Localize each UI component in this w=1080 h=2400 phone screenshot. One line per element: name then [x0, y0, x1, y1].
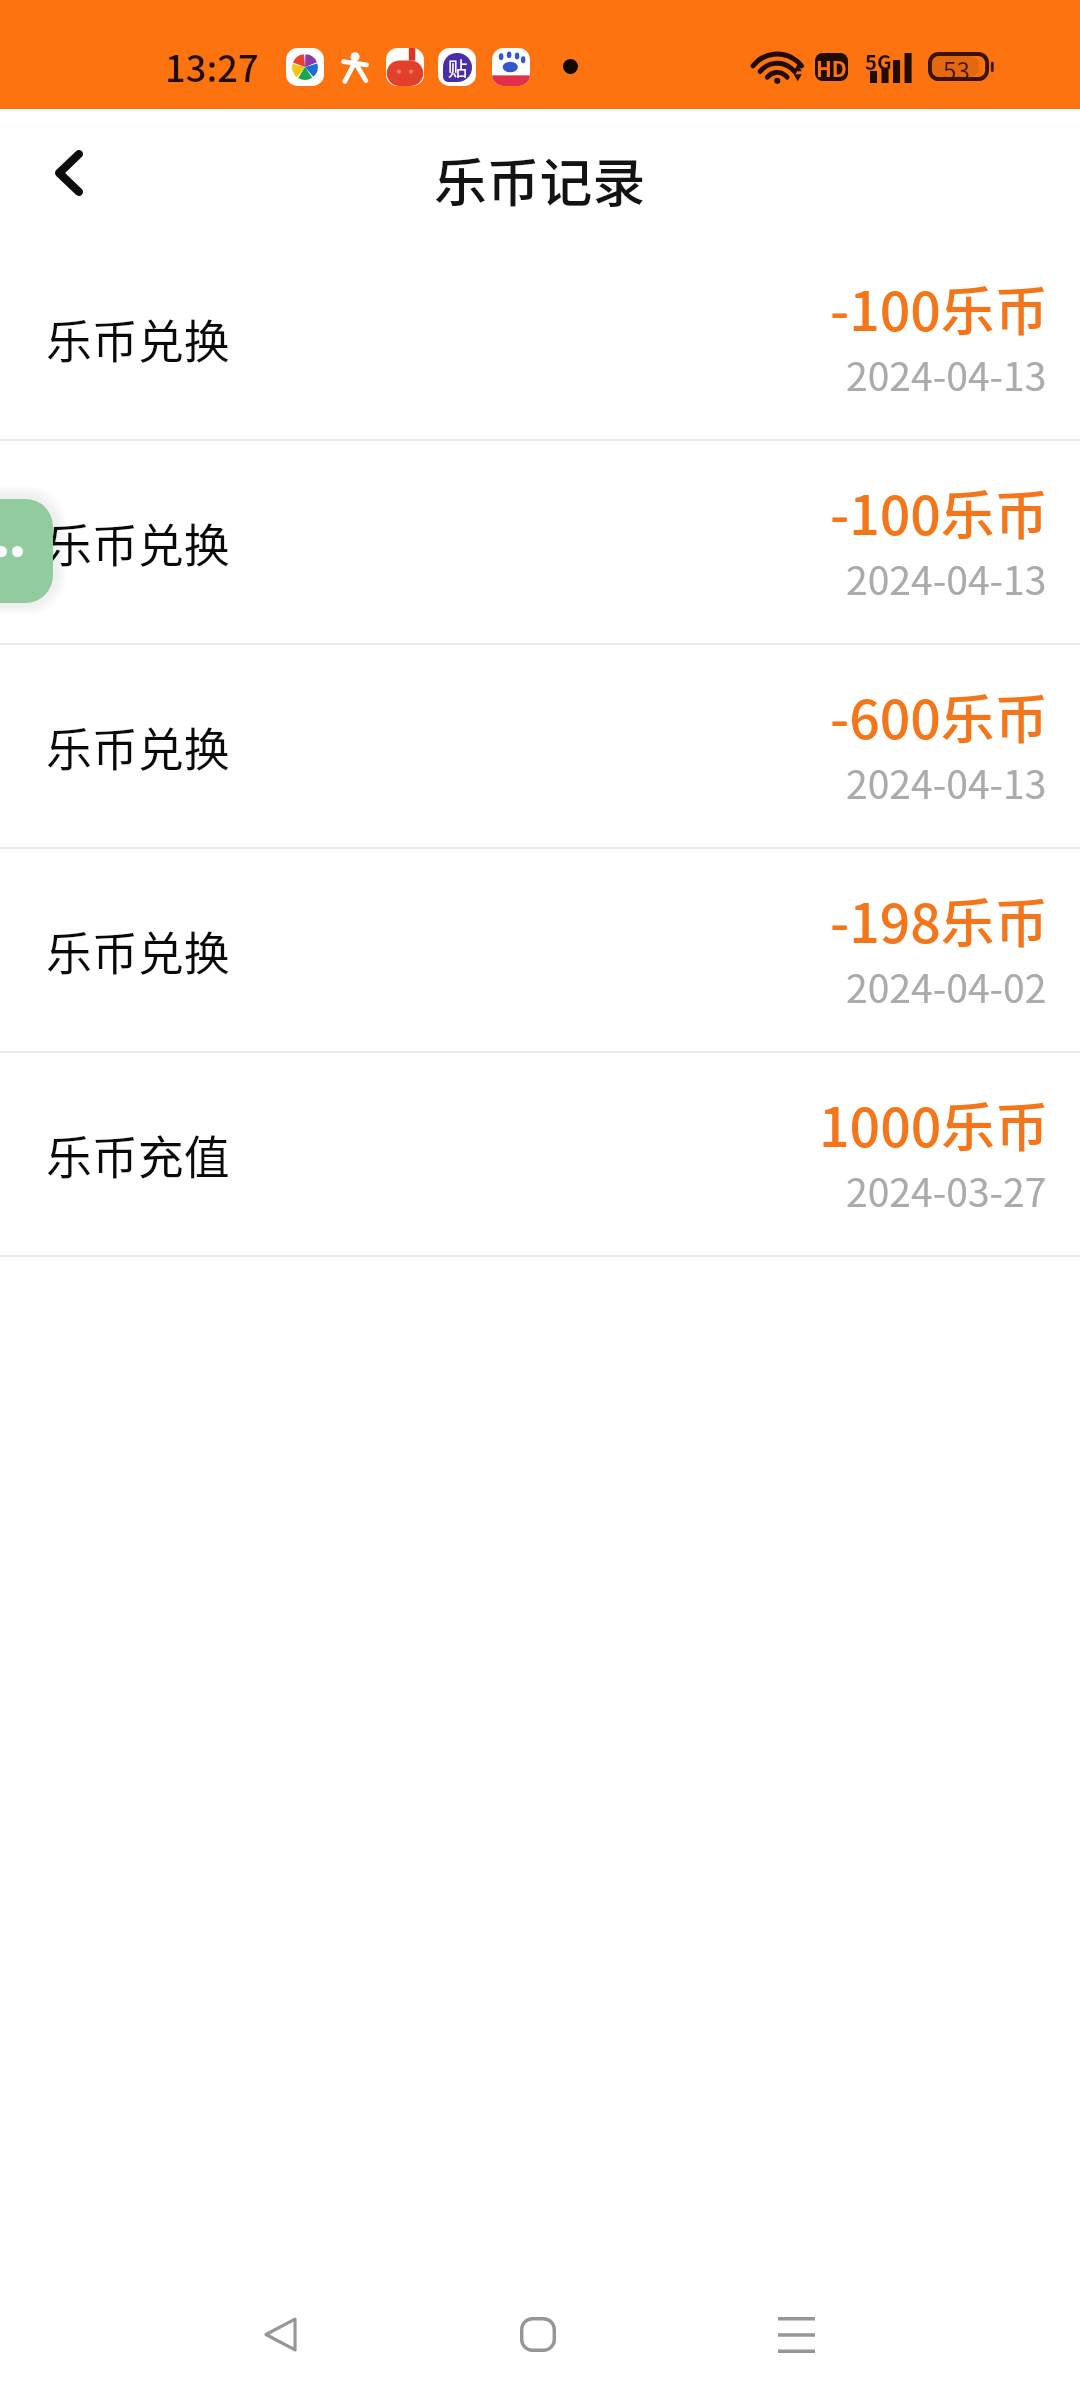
- staticText: 2024-04-13: [846, 754, 1047, 811]
- button[interactable]: Back: [27, 111, 110, 235]
- button[interactable]: 乐币兑换: [0, 645, 1080, 849]
- staticText: HD: [816, 53, 847, 81]
- staticText: 1000乐币: [819, 1085, 1049, 1163]
- staticText: -600乐币: [830, 677, 1049, 755]
- staticText: 2024-04-13: [846, 346, 1047, 403]
- button[interactable]: Recent apps: [716, 2270, 876, 2399]
- staticText: 乐币兑换: [46, 305, 230, 371]
- staticText: 2024-04-13: [846, 550, 1047, 607]
- staticText: 乐币充值: [46, 1121, 230, 1187]
- staticText: -198乐币: [830, 881, 1049, 959]
- staticText: 贴: [448, 54, 468, 82]
- button[interactable]: 乐币兑换: [0, 849, 1080, 1053]
- button[interactable]: 乐币充值: [0, 1053, 1080, 1257]
- staticText: 2024-04-02: [846, 958, 1047, 1015]
- staticText: 乐币兑换: [46, 917, 230, 983]
- staticText: 5G: [865, 46, 892, 75]
- staticText: -100乐币: [830, 269, 1049, 347]
- button[interactable]: 乐币兑换: [0, 441, 1080, 645]
- staticText: -100乐币: [830, 473, 1049, 551]
- staticText: 乐币兑换: [46, 713, 230, 779]
- staticText: 2024-03-27: [846, 1162, 1047, 1219]
- button[interactable]: Home: [458, 2270, 618, 2399]
- button[interactable]: Assistive ball: [0, 499, 53, 603]
- staticText: 乐币记录: [434, 141, 646, 217]
- staticText: 53: [943, 52, 970, 81]
- staticText: 乐币兑换: [46, 509, 230, 575]
- staticText: 13:27: [165, 40, 259, 93]
- button[interactable]: 乐币兑换: [0, 237, 1080, 441]
- button[interactable]: Back: [200, 2270, 360, 2399]
